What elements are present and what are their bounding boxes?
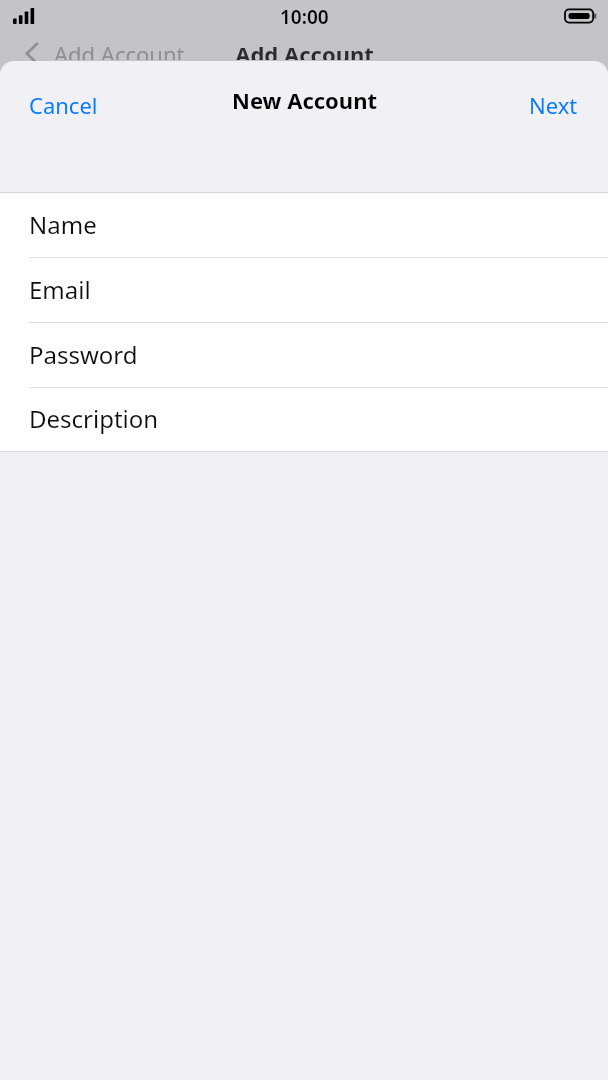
staticText: Password xyxy=(29,338,138,371)
button[interactable]: Password xyxy=(0,323,608,388)
button[interactable]: Description xyxy=(0,388,608,451)
staticText: 10:00 xyxy=(280,4,329,30)
button[interactable]: Email xyxy=(0,258,608,323)
staticText: Cancel xyxy=(29,90,98,120)
staticText: Description xyxy=(29,402,159,435)
staticText: Next xyxy=(529,90,578,120)
staticText: Name xyxy=(29,208,97,241)
staticText: New Account xyxy=(232,85,377,115)
other: Back xyxy=(24,42,40,62)
button[interactable]: Next xyxy=(514,83,593,127)
staticText: Add Account xyxy=(54,39,185,60)
button[interactable]: Cancel xyxy=(14,83,113,127)
button[interactable]: Name xyxy=(0,193,608,258)
staticText: Email xyxy=(29,273,91,306)
staticText: Add Account xyxy=(235,39,374,60)
